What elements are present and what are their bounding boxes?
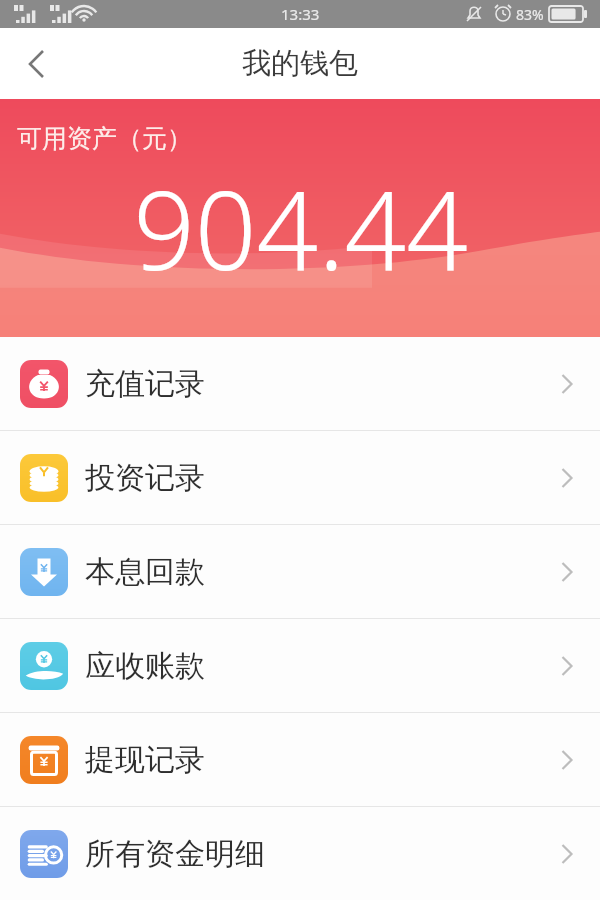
staticText: 904.44 [133,155,468,302]
staticText: 提现记录 [85,741,205,779]
button[interactable]: 投资记录 [0,431,600,524]
staticText: 83% [516,5,544,24]
button[interactable]: Back [0,30,68,98]
staticText: 应收账款 [85,647,205,685]
button[interactable]: 应收账款 [0,619,600,712]
button[interactable]: 提现记录 [0,713,600,806]
button[interactable]: 所有资金明细 [0,807,600,900]
button[interactable]: 本息回款 [0,525,600,618]
button[interactable]: 充值记录 [0,337,600,430]
staticText: 我的钱包 [242,45,358,82]
staticText: 13:33 [281,4,320,24]
staticText: 投资记录 [85,459,205,497]
staticText: 可用资产（元） [17,123,192,154]
staticText: 本息回款 [85,553,205,591]
staticText: 所有资金明细 [85,835,265,873]
staticText: 充值记录 [85,365,205,403]
